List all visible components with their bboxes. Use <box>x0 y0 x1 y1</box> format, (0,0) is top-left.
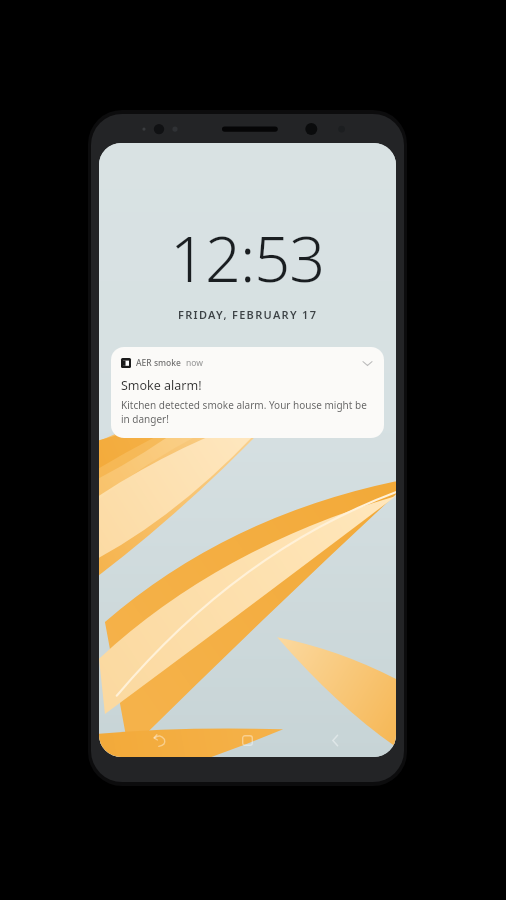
staticText: now <box>186 357 203 369</box>
button[interactable]: Expand notification <box>360 356 374 370</box>
staticText: AER smoke <box>136 357 181 369</box>
button[interactable]: AER smoke <box>111 347 384 438</box>
staticText: Smoke alarm! <box>121 377 202 394</box>
button[interactable]: Home <box>234 727 260 753</box>
staticText: FRIDAY, FEBRUARY 17 <box>178 307 318 322</box>
button[interactable]: Back <box>322 727 348 753</box>
staticText: 12:53 <box>170 215 325 301</box>
staticText: Kitchen detected smoke alarm. Your house… <box>121 398 374 426</box>
button[interactable]: Recent apps <box>146 727 172 753</box>
